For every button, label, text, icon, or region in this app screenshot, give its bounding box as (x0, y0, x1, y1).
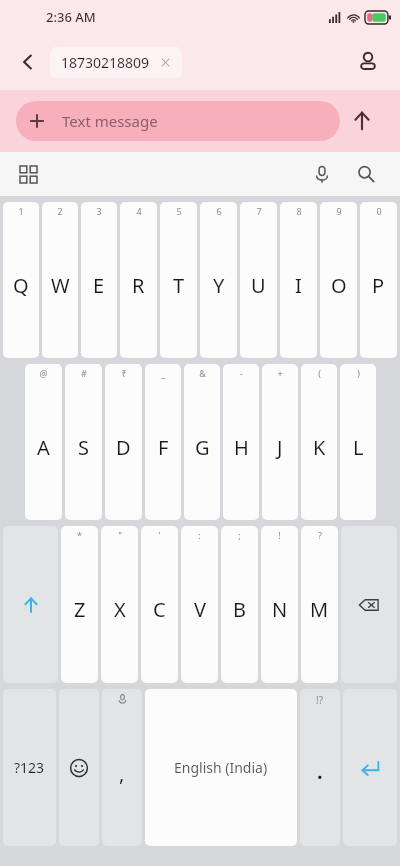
button[interactable]: Comma (102, 689, 142, 846)
staticText: K (313, 434, 326, 461)
staticText: !? (316, 693, 324, 707)
staticText: : (198, 529, 201, 541)
staticText: ! (278, 529, 281, 541)
staticText: F (158, 434, 169, 461)
staticText: ' (158, 529, 161, 541)
staticText: G (195, 434, 210, 461)
button[interactable]: 18730218809 (50, 47, 182, 78)
staticText: & (199, 367, 206, 379)
button[interactable]: J (262, 364, 298, 520)
button[interactable]: Backspace (341, 526, 397, 683)
staticText: Z (74, 596, 86, 623)
button[interactable]: Keyboard options (10, 156, 46, 192)
staticText: R (132, 272, 145, 299)
staticText: " (118, 529, 122, 541)
button[interactable]: Z (61, 526, 98, 683)
button[interactable]: Search (348, 156, 384, 192)
button[interactable]: B (221, 526, 258, 683)
staticText: 18730218809 (61, 53, 150, 72)
button[interactable]: English (India) space (145, 689, 297, 846)
button[interactable]: P (360, 202, 397, 358)
staticText: 1 (18, 205, 24, 217)
button[interactable]: R (120, 202, 157, 358)
staticText: 3 (96, 205, 102, 217)
staticText: Q (13, 272, 29, 299)
button[interactable]: N (261, 526, 298, 683)
staticText: _ (161, 367, 165, 379)
button[interactable]: Voice input (304, 156, 340, 192)
staticText: Y (213, 272, 225, 299)
staticText: V (194, 596, 206, 623)
staticText: 8 (296, 205, 302, 217)
button[interactable]: M (301, 526, 338, 683)
button[interactable]: W (42, 202, 78, 358)
button[interactable]: Add attachment (16, 101, 340, 141)
staticText: English (India) (174, 758, 268, 777)
button[interactable]: Back (10, 44, 46, 80)
staticText: ) (357, 367, 360, 379)
other: Clear (160, 57, 171, 68)
staticText: 0 (376, 205, 382, 217)
button[interactable]: Period (300, 689, 340, 846)
staticText: T (173, 272, 185, 299)
staticText: X (114, 596, 126, 623)
staticText: B (233, 596, 246, 623)
staticText: @ (39, 367, 48, 379)
button[interactable]: H (223, 364, 259, 520)
button[interactable]: ?123 (3, 689, 56, 846)
staticText: D (116, 434, 131, 461)
button[interactable]: F (145, 364, 181, 520)
staticText: H (234, 434, 249, 461)
button[interactable]: K (301, 364, 337, 520)
staticText: C (153, 596, 166, 623)
button[interactable]: D (105, 364, 142, 520)
button[interactable]: Y (200, 202, 237, 358)
staticText: E (93, 272, 105, 299)
button[interactable]: O (320, 202, 357, 358)
staticText: A (37, 434, 50, 461)
staticText: N (272, 596, 288, 623)
button[interactable]: L (340, 364, 376, 520)
staticText: ? (318, 529, 322, 541)
button[interactable]: Q (3, 202, 39, 358)
staticText: ?123 (14, 758, 45, 777)
staticText: M (310, 596, 329, 623)
button[interactable]: Shift (3, 526, 58, 683)
button[interactable]: Send (340, 99, 384, 143)
staticText: 7 (256, 205, 262, 217)
staticText: Text message (62, 111, 158, 131)
button[interactable]: E (81, 202, 117, 358)
staticText: 9 (336, 205, 342, 217)
button[interactable]: C (141, 526, 178, 683)
staticText: U (251, 272, 266, 299)
staticText: I (295, 272, 302, 299)
staticText: P (372, 272, 385, 299)
button[interactable]: Emoji (59, 689, 99, 846)
staticText: 4 (136, 205, 142, 217)
staticText: 2:36 AM (46, 8, 96, 26)
button[interactable]: X (101, 526, 138, 683)
button[interactable]: S (65, 364, 102, 520)
staticText: 5 (176, 205, 182, 217)
staticText: S (78, 434, 89, 461)
button[interactable]: A (25, 364, 62, 520)
staticText: J (277, 434, 283, 461)
staticText: - (240, 367, 243, 379)
button[interactable]: T (160, 202, 197, 358)
staticText: ( (318, 367, 321, 379)
staticText: W (51, 272, 70, 299)
button[interactable]: G (184, 364, 220, 520)
staticText: , (119, 760, 125, 787)
staticText: ; (238, 529, 241, 541)
staticText: L (353, 434, 364, 461)
button[interactable]: U (240, 202, 277, 358)
staticText: 2 (57, 205, 63, 217)
staticText: * (77, 529, 82, 541)
staticText: + (277, 367, 283, 379)
staticText: 6 (216, 205, 222, 217)
staticText: # (81, 367, 87, 379)
button[interactable]: Contact details (348, 42, 388, 82)
button[interactable]: I (280, 202, 317, 358)
button[interactable]: V (181, 526, 218, 683)
button[interactable]: Enter (343, 689, 397, 846)
